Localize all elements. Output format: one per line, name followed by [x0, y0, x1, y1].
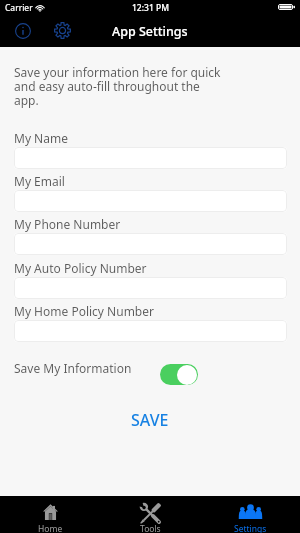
staticText: My Email [14, 173, 65, 189]
button[interactable]: Save My Information toggle [160, 364, 198, 385]
button[interactable]: SAVE [0, 406, 300, 434]
button[interactable]: Tools [100, 496, 200, 533]
staticText: App Settings [112, 23, 188, 40]
staticText: Save My Information [14, 360, 132, 376]
staticText: Tools [140, 523, 161, 533]
button[interactable] [14, 190, 287, 212]
button[interactable]: Settings [200, 496, 300, 533]
staticText: Save your information here for quick and… [14, 64, 222, 109]
button[interactable]: Settings [47, 16, 78, 45]
staticText: My Home Policy Number [14, 303, 154, 319]
button[interactable] [14, 277, 287, 299]
staticText: Home [38, 523, 63, 533]
staticText: My Auto Policy Number [14, 260, 147, 276]
staticText: Carrier [5, 2, 33, 14]
staticText: My Phone Number [14, 216, 121, 232]
button[interactable]: Home [0, 496, 100, 533]
button[interactable] [14, 320, 287, 342]
staticText: SAVE [131, 409, 169, 431]
button[interactable] [14, 147, 287, 169]
staticText: Settings [234, 523, 267, 533]
button[interactable]: Information [7, 16, 38, 45]
button[interactable] [14, 233, 287, 255]
staticText: My Name [14, 130, 68, 146]
staticText: 12:31 PM [132, 2, 169, 14]
